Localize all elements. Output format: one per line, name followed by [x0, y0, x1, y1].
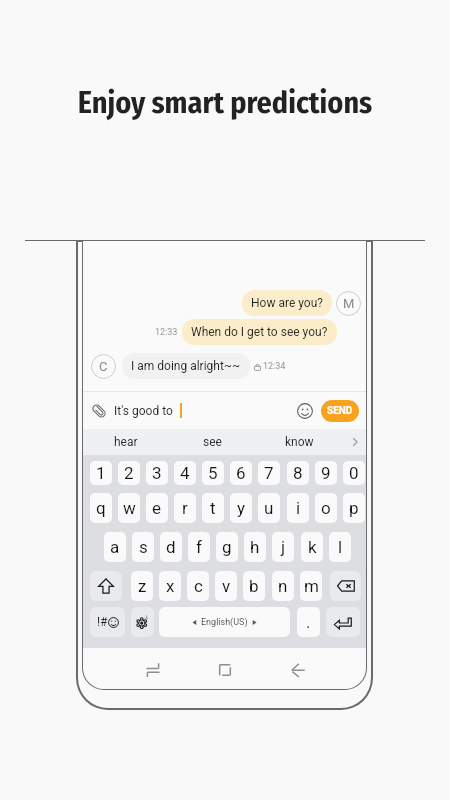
button[interactable]: 2	[118, 461, 140, 485]
staticText: 12:33	[155, 327, 178, 338]
button[interactable]: i	[287, 493, 309, 523]
button[interactable]: More predictions	[343, 429, 367, 455]
button[interactable]: b	[243, 571, 265, 601]
button[interactable]: c	[187, 571, 209, 601]
staticText: b	[249, 576, 259, 596]
button[interactable]: Shift	[90, 571, 122, 601]
button[interactable]: hear	[82, 429, 169, 455]
staticText: .	[306, 612, 311, 632]
button[interactable]: m	[300, 571, 322, 601]
staticText: l	[338, 537, 343, 557]
staticText: n	[278, 576, 288, 596]
staticText: d	[166, 537, 176, 557]
staticText: M	[343, 296, 355, 311]
staticText: c	[194, 576, 203, 596]
staticText: i	[296, 498, 301, 518]
staticText: How are you?	[251, 296, 323, 310]
staticText: m	[304, 576, 319, 596]
button[interactable]: Enter	[326, 607, 360, 637]
staticText: It's good to	[114, 404, 173, 418]
staticText: C	[99, 359, 108, 374]
button[interactable]: When do I get to see you?	[182, 319, 337, 345]
button[interactable]: Keyboard settings	[131, 607, 154, 637]
staticText: SEND	[327, 405, 353, 417]
button[interactable]: s	[132, 532, 154, 562]
staticText: k	[308, 537, 317, 557]
button[interactable]: Backspace	[330, 571, 361, 601]
button[interactable]: v	[215, 571, 237, 601]
button[interactable]: 8	[287, 461, 309, 485]
staticText: English(US)	[201, 617, 248, 628]
staticText: t	[210, 498, 216, 518]
button[interactable]: SEND	[321, 400, 359, 422]
button[interactable]: o	[315, 493, 337, 523]
staticText: r	[182, 498, 188, 518]
button[interactable]: Home	[206, 648, 244, 690]
button[interactable]: q	[90, 493, 112, 523]
staticText: q	[96, 498, 106, 518]
staticText: 1	[96, 463, 106, 483]
button[interactable]: g	[216, 532, 238, 562]
staticText: 2	[124, 463, 134, 483]
staticText: s	[139, 537, 148, 557]
button[interactable]: p	[343, 493, 365, 523]
staticText: u	[264, 498, 274, 518]
button[interactable]: x	[159, 571, 181, 601]
button[interactable]: l	[329, 532, 351, 562]
staticText: 3	[152, 463, 162, 483]
button[interactable]: How are you?	[242, 290, 332, 316]
staticText: Enjoy smart predictions	[0, 85, 450, 121]
button[interactable]: w	[118, 493, 140, 523]
button[interactable]: k	[301, 532, 323, 562]
button[interactable]: d	[160, 532, 182, 562]
button[interactable]: t	[202, 493, 224, 523]
button[interactable]: 7	[258, 461, 280, 485]
staticText: 5	[208, 463, 218, 483]
button[interactable]: know	[256, 429, 343, 455]
button[interactable]: 4	[174, 461, 196, 485]
button[interactable]: Back	[279, 648, 317, 690]
button[interactable]: M	[336, 291, 361, 316]
button[interactable]: f	[188, 532, 210, 562]
button[interactable]: Recent apps	[134, 648, 172, 690]
button[interactable]: .	[297, 607, 320, 637]
button[interactable]: u	[258, 493, 280, 523]
button[interactable]: Symbols	[90, 607, 125, 637]
staticText: !#	[97, 615, 108, 629]
button[interactable]: e	[146, 493, 168, 523]
button[interactable]: English(US)	[159, 607, 290, 637]
staticText: p	[349, 498, 359, 518]
staticText: know	[285, 435, 314, 449]
button[interactable]: 9	[315, 461, 337, 485]
staticText: When do I get to see you?	[191, 325, 328, 339]
staticText: 4	[180, 463, 190, 483]
staticText: I am doing alright~~	[131, 359, 241, 373]
button[interactable]: z	[131, 571, 153, 601]
button[interactable]: y	[230, 493, 252, 523]
button[interactable]: see	[169, 429, 256, 455]
staticText: y	[237, 498, 246, 518]
button[interactable]: C	[91, 354, 116, 379]
staticText: h	[250, 537, 260, 557]
button[interactable]: a	[104, 532, 126, 562]
button[interactable]: Emoji	[297, 403, 313, 419]
staticText: 0	[349, 463, 359, 483]
staticText: 6	[236, 463, 246, 483]
button[interactable]: 0	[343, 461, 365, 485]
staticText: 8	[293, 463, 303, 483]
staticText: see	[203, 435, 222, 449]
staticText: 12:34	[263, 361, 286, 372]
button[interactable]: 3	[146, 461, 168, 485]
button[interactable]: 1	[90, 461, 112, 485]
button[interactable]: r	[174, 493, 196, 523]
button[interactable]: n	[272, 571, 294, 601]
button[interactable]: j	[272, 532, 294, 562]
other: Attach file	[91, 403, 107, 419]
button[interactable]: I am doing alright~~	[122, 353, 250, 379]
staticText: w	[123, 498, 136, 518]
staticText: o	[321, 498, 331, 518]
staticText: 9	[321, 463, 331, 483]
button[interactable]: h	[244, 532, 266, 562]
button[interactable]: 6	[230, 461, 252, 485]
button[interactable]: 5	[202, 461, 224, 485]
